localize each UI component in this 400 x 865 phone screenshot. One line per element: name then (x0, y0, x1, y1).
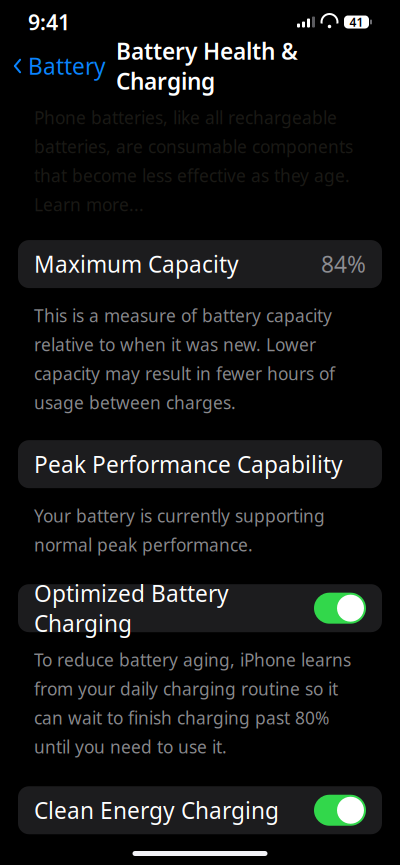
staticText: To reduce battery aging, iPhone learns f… (34, 648, 351, 758)
staticText: Your battery is currently supporting nor… (34, 504, 325, 556)
staticText: 41 (349, 14, 363, 30)
staticText: This is a measure of battery capacity re… (34, 304, 335, 414)
button[interactable]: Optimized Battery Charging (18, 584, 382, 632)
staticText: In your region, iPhone will try to reduc… (34, 850, 358, 865)
staticText: 84% (321, 249, 366, 279)
staticText: Battery (28, 51, 106, 81)
button[interactable]: Battery (0, 45, 106, 87)
staticText: Phone batteries, like all rechargeable b… (34, 106, 353, 216)
staticText: Maximum Capacity (34, 249, 239, 279)
staticText: Battery Health & Charging (116, 36, 298, 96)
staticText: Clean Energy Charging (34, 795, 279, 825)
staticText: Peak Performance Capability (34, 449, 343, 479)
staticText: 9:41 (28, 8, 70, 36)
staticText: Optimized Battery Charging (34, 578, 229, 638)
button[interactable]: Clean Energy Charging (18, 786, 382, 834)
